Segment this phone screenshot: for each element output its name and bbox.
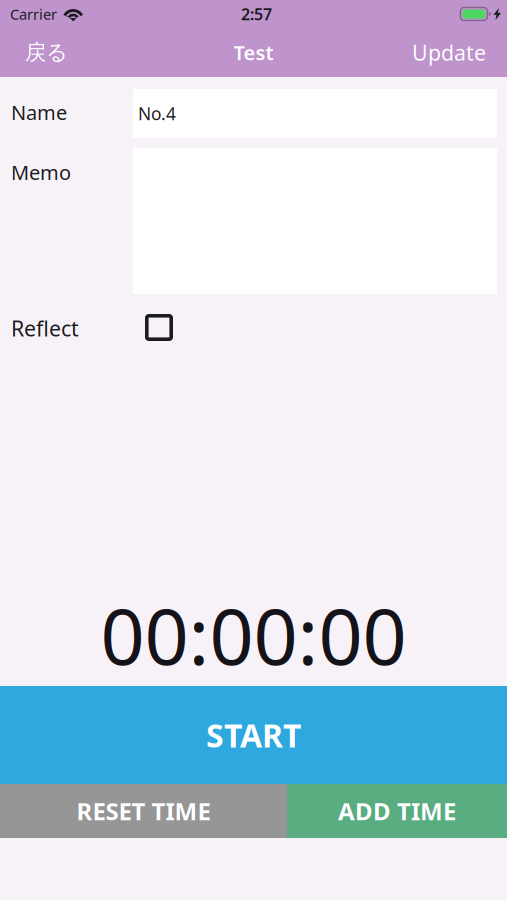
staticText: Memo: [11, 159, 71, 186]
button[interactable]: RESET TIME: [0, 784, 287, 838]
staticText: Carrier: [10, 4, 57, 24]
staticText: 2:57: [241, 3, 272, 25]
staticText: Update: [412, 38, 486, 67]
button[interactable]: Update: [400, 28, 507, 77]
staticText: START: [206, 714, 301, 756]
staticText: No.4: [138, 102, 176, 125]
button[interactable]: ADD TIME: [287, 784, 507, 838]
staticText: Test: [233, 39, 273, 66]
staticText: RESET TIME: [76, 795, 210, 827]
staticText: 戻る: [25, 39, 68, 66]
staticText: 00:00:00: [100, 583, 406, 686]
button[interactable]: Reflect: [133, 314, 173, 341]
staticText: Reflect: [11, 314, 79, 342]
staticText: ADD TIME: [338, 795, 456, 827]
staticText: Name: [11, 99, 67, 126]
button[interactable]: 戻る: [0, 28, 80, 77]
button[interactable]: START: [0, 686, 507, 784]
